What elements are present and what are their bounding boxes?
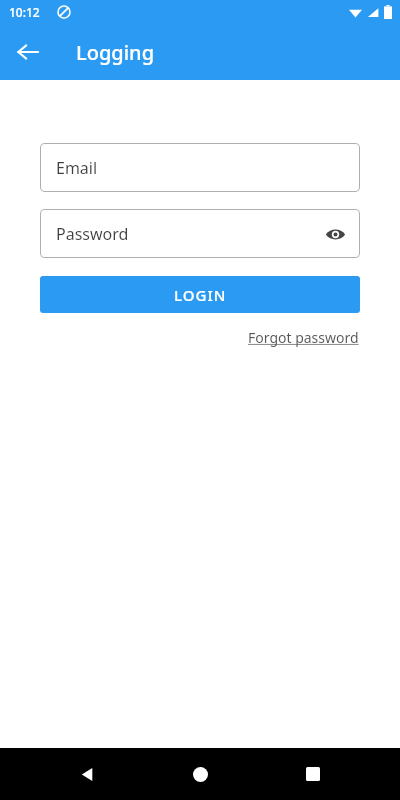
staticText: 10:12 [9,4,40,20]
button[interactable]: Password [40,209,360,258]
button[interactable]: Recent apps [293,754,333,794]
button[interactable]: Home [180,754,220,794]
button[interactable]: Back [6,30,50,74]
button[interactable]: Forgot password [247,327,360,348]
staticText: Email [56,157,98,179]
button[interactable]: Email [40,143,360,192]
staticText: Forgot password [248,328,359,347]
button[interactable]: Show password [318,217,352,251]
button[interactable]: LOGIN [40,276,360,313]
staticText: Logging [76,39,155,66]
staticText: LOGIN [174,285,227,305]
button[interactable]: Back [67,754,107,794]
staticText: Password [56,223,129,245]
